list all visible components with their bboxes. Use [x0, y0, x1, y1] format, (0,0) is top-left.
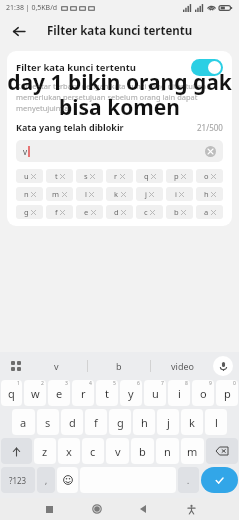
button[interactable]: e — [48, 380, 70, 406]
staticText: d — [69, 415, 76, 430]
staticText: b — [174, 207, 179, 217]
button[interactable]: w — [24, 380, 46, 406]
button[interactable]: b — [131, 438, 154, 464]
staticText: day 1 bikin orang gak bisa komen — [4, 68, 235, 121]
button[interactable]: p — [216, 380, 238, 406]
button[interactable]: Backspace — [206, 438, 238, 464]
button[interactable]: d — [106, 205, 133, 219]
button[interactable]: d — [61, 409, 83, 435]
button[interactable]: g — [16, 205, 43, 219]
button[interactable]: Voice input — [213, 356, 233, 376]
button[interactable]: c — [82, 438, 104, 464]
staticText: Filter kata kunci tertentu — [47, 23, 193, 39]
button[interactable]: f — [46, 205, 73, 219]
button[interactable]: y — [120, 380, 142, 406]
button[interactable]: p — [166, 169, 193, 183]
button[interactable]: m — [46, 187, 73, 201]
button[interactable]: j — [157, 409, 179, 435]
button[interactable]: l — [76, 187, 103, 201]
staticText: 9 — [209, 380, 212, 387]
staticText: h — [204, 189, 209, 199]
staticText: 7 — [161, 380, 164, 387]
button[interactable]: i — [166, 187, 193, 201]
button[interactable]: s — [76, 169, 103, 183]
staticText: Filter kata kunci tertentu — [16, 61, 137, 74]
button[interactable]: g — [109, 409, 131, 435]
button[interactable]: b — [166, 205, 193, 219]
button[interactable]: n — [156, 438, 179, 464]
button[interactable]: q — [136, 169, 163, 183]
staticText: 6 — [137, 380, 140, 387]
staticText: z — [42, 444, 48, 459]
button[interactable]: a — [196, 205, 223, 219]
staticText: video — [171, 360, 194, 372]
button[interactable]: f — [85, 409, 107, 435]
staticText: a — [204, 207, 209, 217]
staticText: u — [24, 171, 29, 181]
button[interactable]: b — [88, 352, 150, 380]
button[interactable]: , — [37, 467, 55, 493]
button[interactable]: video — [151, 352, 213, 380]
staticText: l — [85, 189, 87, 199]
staticText: k — [189, 415, 195, 430]
button[interactable]: k — [106, 187, 133, 201]
button[interactable]: q — [1, 380, 22, 406]
button[interactable]: r — [72, 380, 94, 406]
button[interactable]: Shift — [1, 438, 32, 464]
staticText: s — [84, 171, 88, 181]
button[interactable]: Home — [87, 499, 107, 519]
button[interactable]: r — [106, 169, 133, 183]
staticText: 21:38 | 0,5KB/d — [6, 3, 58, 13]
staticText: e — [56, 386, 63, 401]
button[interactable]: u — [144, 380, 166, 406]
button[interactable]: Clear — [205, 146, 216, 157]
staticText: 5 — [113, 380, 116, 387]
button[interactable]: o — [192, 380, 214, 406]
button[interactable]: v — [23, 140, 216, 162]
button[interactable]: v — [26, 352, 87, 380]
staticText: g — [117, 415, 124, 430]
staticText: r — [81, 386, 86, 401]
button[interactable]: Back — [134, 499, 154, 519]
button[interactable]: Menu — [6, 356, 26, 376]
button[interactable]: t — [96, 380, 118, 406]
button[interactable]: l — [205, 409, 227, 435]
staticText: 21/500 — [197, 122, 223, 133]
staticText: q — [8, 386, 15, 401]
button[interactable]: h — [133, 409, 155, 435]
staticText: d — [114, 207, 119, 217]
staticText: i — [178, 386, 181, 401]
button[interactable]: a — [12, 409, 35, 435]
button[interactable]: j — [136, 187, 163, 201]
button[interactable]: t — [46, 169, 73, 183]
button[interactable]: Filter kata kunci tertentu — [16, 59, 223, 76]
staticText: g — [24, 207, 29, 217]
button[interactable]: Recents — [39, 499, 59, 519]
button[interactable]: . — [178, 467, 199, 493]
staticText: v — [115, 444, 121, 459]
staticText: p — [224, 386, 231, 401]
button[interactable]: k — [181, 409, 203, 435]
button[interactable]: c — [136, 205, 163, 219]
button[interactable]: Enter — [201, 467, 238, 493]
staticText: 4 — [89, 380, 92, 387]
button[interactable]: ?123 — [1, 467, 35, 493]
button[interactable]: s — [37, 409, 59, 435]
staticText: . — [187, 475, 190, 486]
staticText: Komentar terbaru dengan kata kunci yang … — [16, 81, 206, 113]
button[interactable]: h — [196, 187, 223, 201]
button[interactable]: o — [196, 169, 223, 183]
button[interactable]: m — [181, 438, 204, 464]
button[interactable]: n — [16, 187, 43, 201]
button[interactable]: u — [16, 169, 43, 183]
staticText: o — [200, 386, 207, 401]
button[interactable]: e — [76, 205, 103, 219]
button[interactable]: Back — [6, 19, 30, 43]
button[interactable]: Emoji — [57, 467, 78, 493]
button[interactable]: Accessibility — [181, 499, 201, 519]
button[interactable]: z — [34, 438, 56, 464]
button[interactable]: x — [58, 438, 80, 464]
button[interactable]: i — [168, 380, 190, 406]
button[interactable]: v — [106, 438, 129, 464]
